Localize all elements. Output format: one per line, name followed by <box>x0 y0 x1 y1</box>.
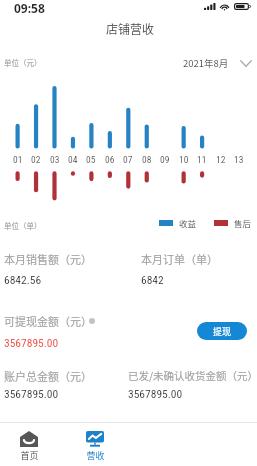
button[interactable]: 提现 <box>197 322 247 340</box>
staticText: 06 <box>105 154 115 165</box>
staticText: 13 <box>234 154 244 165</box>
staticText: 2021年8月 <box>183 56 229 70</box>
staticText: 提现 <box>213 325 232 338</box>
staticText: 08 <box>142 154 152 165</box>
staticText: 04 <box>68 154 78 165</box>
staticText: 3567895.00 <box>4 336 59 349</box>
staticText: 3567895.00 <box>128 387 183 400</box>
staticText: 12 <box>216 154 226 165</box>
staticText: 收益 <box>179 217 197 229</box>
staticText: 单位（元） <box>4 57 42 68</box>
staticText: 已发/未确认收货金额（元） <box>128 368 257 383</box>
staticText: 店铺营收 <box>106 20 155 37</box>
staticText: 本月订单（单） <box>141 251 218 267</box>
button[interactable]: 2021年8月 <box>183 56 252 70</box>
staticText: 首页 <box>20 449 39 462</box>
staticText: 6842 <box>141 273 164 286</box>
staticText: 账户总金额（元） <box>4 368 92 384</box>
staticText: 02 <box>31 154 41 165</box>
staticText: 11 <box>197 154 207 165</box>
button[interactable]: 首页 <box>0 427 61 465</box>
staticText: 单位（单） <box>4 220 42 231</box>
staticText: 07 <box>123 154 133 165</box>
staticText: 05 <box>86 154 96 165</box>
staticText: 09:58 <box>14 0 45 13</box>
staticText: 09 <box>160 154 170 165</box>
staticText: 售后 <box>234 217 252 229</box>
staticText: 10 <box>179 154 189 165</box>
staticText: 01 <box>13 154 23 165</box>
staticText: 营收 <box>86 449 105 462</box>
staticText: 03 <box>50 154 60 165</box>
staticText: 6842.56 <box>4 273 42 286</box>
staticText: 本月销售额（元） <box>4 251 92 267</box>
button[interactable]: 营收 <box>63 427 127 465</box>
staticText: 可提现金额（元） <box>4 313 92 329</box>
staticText: 3567895.00 <box>4 387 59 400</box>
